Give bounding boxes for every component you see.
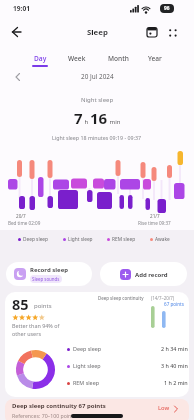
- staticText: Night sleep: [81, 96, 114, 104]
- button[interactable]: [168, 28, 178, 38]
- staticText: Bed time 02:09: [8, 220, 41, 226]
- button[interactable]: [146, 26, 158, 38]
- staticText: Deep sleep: [73, 345, 102, 352]
- button[interactable]: Deep sleep continuity 67 points: [5, 399, 189, 420]
- staticText: Deep sleep continuity 67 points: [12, 402, 106, 410]
- button[interactable]: 85: [5, 292, 189, 397]
- staticText: Week: [68, 54, 86, 63]
- staticText: Better than 94% of: [12, 322, 60, 329]
- staticText: Deep sleep continuity: [98, 295, 144, 301]
- staticText: Day: [34, 54, 47, 63]
- staticText: h: [83, 118, 90, 126]
- staticText: 2 h 34 min: [161, 345, 188, 352]
- staticText: Sleep: [87, 27, 108, 38]
- staticText: 1 h 2 min: [164, 379, 188, 386]
- button[interactable]: Add record: [100, 262, 187, 286]
- staticText: Sleep sounds: [32, 276, 60, 282]
- staticText: Add record: [135, 271, 168, 279]
- button[interactable]: Year: [137, 51, 173, 65]
- staticText: 20/7: [16, 213, 26, 219]
- button[interactable]: [14, 72, 22, 82]
- staticText: Awake: [155, 236, 170, 243]
- staticText: 21/7: [150, 213, 160, 219]
- staticText: References: 70–100 points: [12, 412, 76, 419]
- staticText: 3 h 40 min: [161, 362, 188, 369]
- staticText: REM sleep: [112, 236, 136, 243]
- staticText: 16: [90, 108, 108, 128]
- staticText: Deep sleep: [23, 236, 49, 243]
- button[interactable]: Week: [59, 51, 95, 65]
- staticText: 19:01: [13, 4, 30, 13]
- staticText: Light sleep: [73, 362, 101, 369]
- button[interactable]: Record sleep: [6, 262, 92, 286]
- staticText: (14/7–20/7): [151, 295, 175, 301]
- staticText: Record sleep: [30, 266, 69, 274]
- staticText: 96: [164, 5, 170, 12]
- staticText: 85: [12, 294, 29, 314]
- staticText: Low: [158, 404, 170, 412]
- button[interactable]: [8, 24, 24, 40]
- staticText: 7: [74, 108, 83, 128]
- staticText: REM sleep: [73, 379, 100, 386]
- staticText: points: [34, 302, 52, 310]
- staticText: 67 points: [164, 301, 184, 307]
- button[interactable]: Day: [22, 51, 58, 65]
- staticText: other users: [12, 330, 41, 337]
- staticText: Light sleep 18 minutes 09:19 - 09:37: [52, 134, 142, 141]
- staticText: Rise time 09:37: [138, 220, 171, 226]
- staticText: 20 Jul 2024: [81, 72, 114, 81]
- button[interactable]: Month: [100, 51, 136, 65]
- staticText: min: [108, 118, 121, 126]
- staticText: Month: [108, 54, 129, 63]
- staticText: Light sleep: [68, 236, 93, 243]
- staticText: Year: [148, 54, 162, 63]
